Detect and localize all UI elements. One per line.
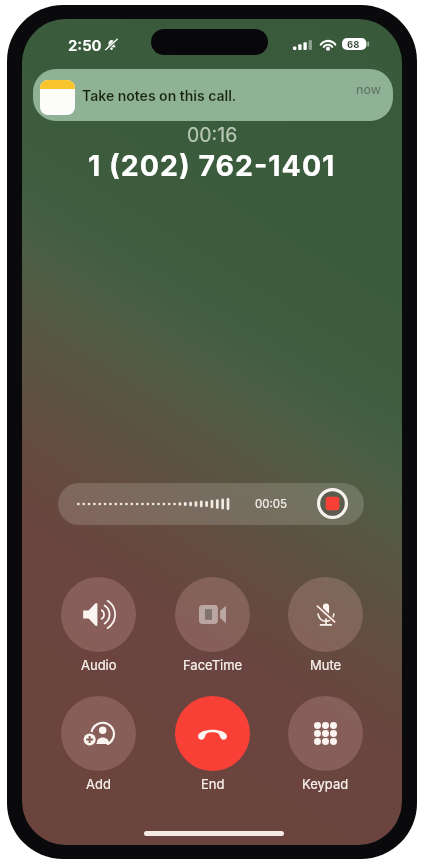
button[interactable]: 00:05 [58,483,364,525]
staticText: FaceTime [183,657,243,673]
button[interactable]: Add [61,696,136,792]
button[interactable]: FaceTime [175,577,250,673]
staticText: Audio [81,657,117,673]
staticText: 1 (202) 762-1401 [88,148,336,182]
staticText: 00:16 [187,123,238,147]
button[interactable]: Keypad [288,696,363,792]
staticText: End [201,776,225,792]
button[interactable]: Audio [61,577,136,673]
button[interactable]: Take notes on this call. [33,69,393,121]
staticText: Mute [310,657,342,673]
staticText: Add [86,776,111,792]
staticText: 2:50 [68,36,102,54]
staticText: now [356,82,381,97]
button[interactable]: Stop recording [317,488,348,519]
staticText: 00:05 [255,497,288,511]
staticText: Take notes on this call. [82,87,237,104]
staticText: 68 [347,39,360,50]
button[interactable]: Mute [288,577,363,673]
button[interactable]: End [175,696,250,792]
staticText: Keypad [302,776,349,792]
